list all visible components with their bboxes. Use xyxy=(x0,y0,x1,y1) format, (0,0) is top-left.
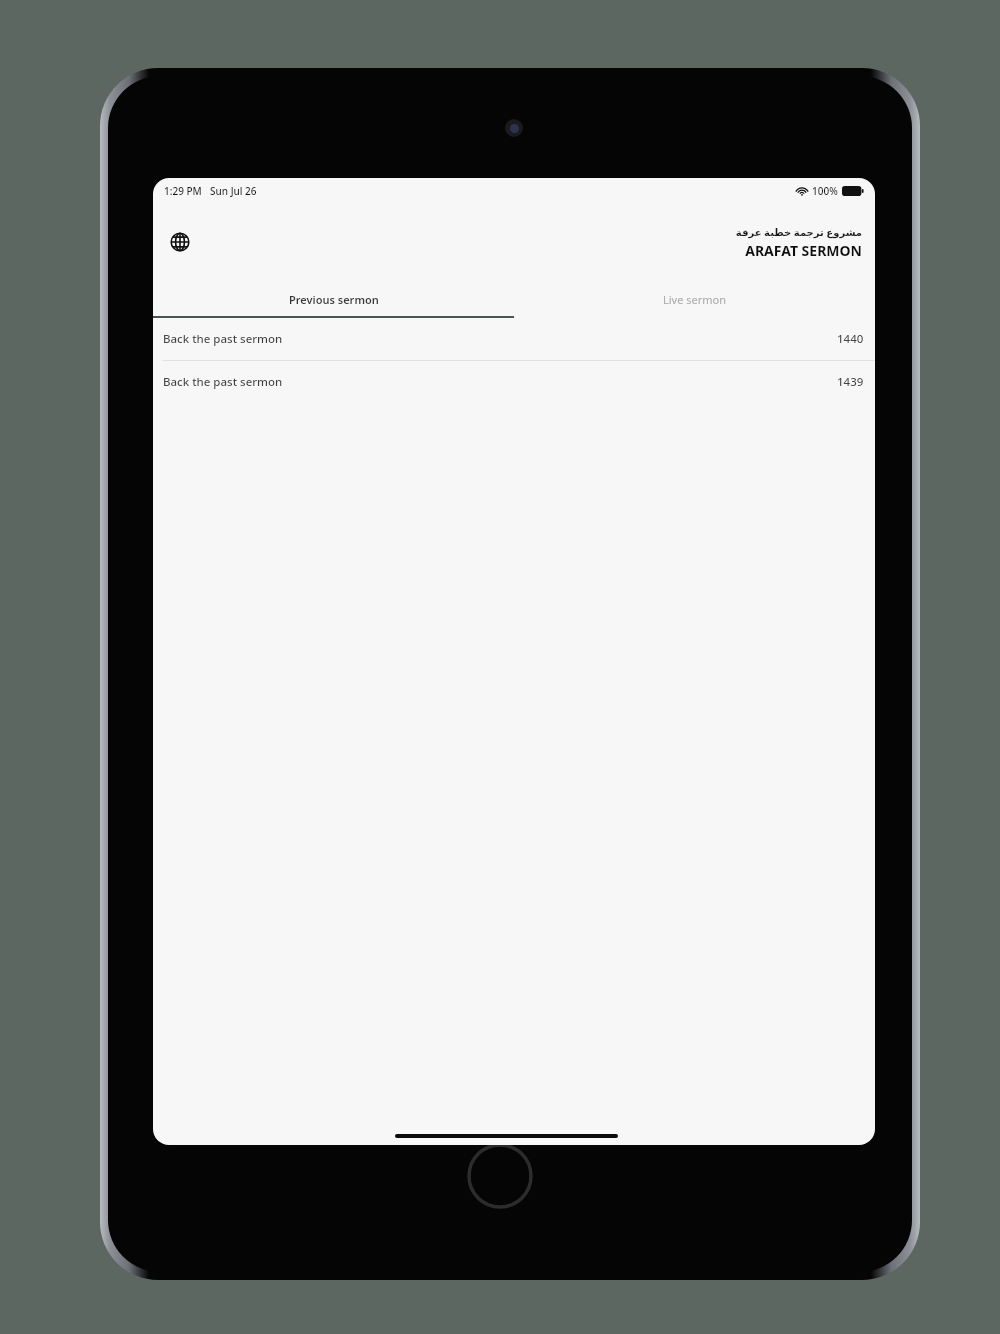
button[interactable]: Home xyxy=(467,1143,533,1209)
button[interactable]: Change language xyxy=(160,222,200,262)
staticText: 1:29 PM xyxy=(164,184,202,198)
button[interactable]: Back the past sermon xyxy=(153,318,875,360)
staticText: Sun Jul 26 xyxy=(210,184,257,198)
staticText: 1439 xyxy=(837,374,864,390)
staticText: ARAFAT SERMON xyxy=(745,241,862,260)
staticText: 1440 xyxy=(837,331,864,347)
button[interactable]: Previous sermon xyxy=(153,280,514,318)
button[interactable]: Back the past sermon xyxy=(153,361,875,403)
staticText: مشروع ترجمة خطبة عرفة xyxy=(735,225,862,239)
staticText: Live sermon xyxy=(663,292,727,307)
staticText: Back the past sermon xyxy=(163,331,283,347)
staticText: Back the past sermon xyxy=(163,374,283,390)
staticText: Previous sermon xyxy=(289,292,379,307)
button[interactable]: Live sermon xyxy=(514,280,875,318)
staticText: 100% xyxy=(812,184,838,198)
